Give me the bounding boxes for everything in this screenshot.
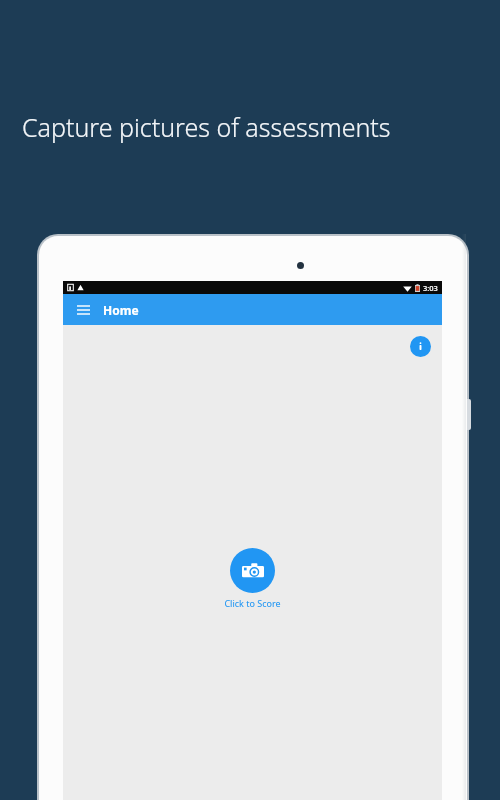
button[interactable]: Open navigation menu <box>71 298 95 322</box>
staticText: Capture pictures of assessments <box>22 110 391 144</box>
staticText: Click to Score <box>224 597 281 609</box>
button[interactable]: Click to Score, capture picture <box>230 548 275 593</box>
staticText: Home <box>103 302 139 318</box>
staticText: 3:03 <box>423 283 438 293</box>
button[interactable]: Information <box>410 336 431 357</box>
